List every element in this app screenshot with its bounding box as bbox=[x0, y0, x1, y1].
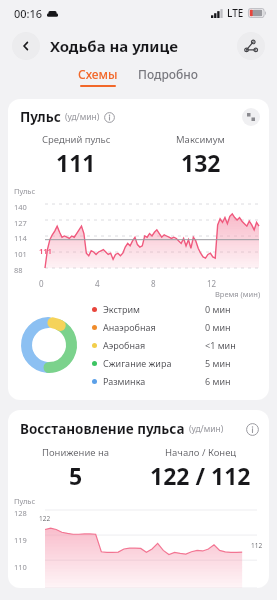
staticText: 8 bbox=[151, 278, 207, 289]
staticText: (уд/мин) bbox=[189, 423, 224, 435]
button[interactable]: Схемы bbox=[72, 66, 124, 87]
staticText: 128 bbox=[14, 508, 27, 518]
staticText: 119 bbox=[14, 535, 27, 545]
staticText: 110 bbox=[14, 562, 27, 572]
button[interactable]: Подробно bbox=[132, 66, 205, 82]
button[interactable]: Восстановление пульса bbox=[8, 410, 269, 588]
staticText: 112 bbox=[251, 541, 263, 550]
staticText: Пульс bbox=[14, 496, 36, 506]
staticText: Ходьба на улице bbox=[50, 36, 178, 56]
button[interactable]: Анаэробная bbox=[92, 318, 257, 336]
button[interactable]: Сжигание жира bbox=[92, 354, 257, 372]
staticText: Пульс bbox=[20, 108, 61, 126]
staticText: Начало / Конец bbox=[165, 446, 237, 459]
button[interactable]: Пульс bbox=[8, 99, 269, 400]
button[interactable]: Экстрим bbox=[92, 300, 257, 318]
button[interactable]: Маршрут bbox=[237, 32, 265, 60]
staticText: Подробно bbox=[138, 66, 199, 82]
staticText: 6 мин bbox=[205, 375, 231, 387]
staticText: Анаэробная bbox=[103, 321, 156, 333]
staticText: Сжигание жира bbox=[103, 357, 172, 369]
staticText: 0 мин bbox=[205, 303, 231, 315]
staticText: 88 bbox=[14, 265, 23, 275]
staticText: LTE bbox=[227, 6, 244, 20]
staticText: 5 bbox=[69, 460, 83, 491]
staticText: Средний пульс bbox=[42, 133, 111, 146]
button[interactable]: Развернуть bbox=[242, 108, 260, 126]
staticText: 111 bbox=[56, 147, 96, 178]
staticText: Экстрим bbox=[103, 303, 141, 315]
staticText: Разминка bbox=[103, 375, 146, 387]
button[interactable]: Назад bbox=[12, 32, 40, 60]
staticText: Восстановление пульса bbox=[20, 420, 185, 438]
staticText: Понижение на bbox=[42, 446, 110, 459]
staticText: Схемы bbox=[78, 66, 118, 82]
staticText: 4 bbox=[95, 278, 151, 289]
button[interactable]: Аэробная bbox=[92, 336, 257, 354]
other: Информация bbox=[104, 112, 115, 123]
staticText: 111 bbox=[39, 246, 52, 256]
staticText: 12 bbox=[207, 278, 263, 289]
staticText: Максимум bbox=[176, 133, 225, 146]
staticText: Время (мин) bbox=[215, 289, 261, 299]
staticText: 122 / 112 bbox=[150, 460, 251, 491]
staticText: (уд/мин) bbox=[65, 111, 100, 123]
staticText: <1 мин bbox=[205, 339, 236, 351]
staticText: 122 bbox=[39, 514, 51, 523]
staticText: 0 bbox=[39, 278, 95, 289]
staticText: 140 bbox=[14, 202, 27, 212]
staticText: 101 bbox=[14, 249, 27, 259]
staticText: 114 bbox=[14, 233, 27, 243]
staticText: Пульс bbox=[14, 186, 36, 196]
staticText: 127 bbox=[14, 218, 27, 228]
staticText: 5 мин bbox=[205, 357, 231, 369]
other: Информация bbox=[246, 423, 259, 436]
staticText: 00:16 bbox=[14, 6, 43, 21]
staticText: 0 мин bbox=[205, 321, 231, 333]
staticText: 132 bbox=[181, 147, 221, 178]
staticText: Аэробная bbox=[103, 339, 146, 351]
button[interactable]: Разминка bbox=[92, 372, 257, 390]
